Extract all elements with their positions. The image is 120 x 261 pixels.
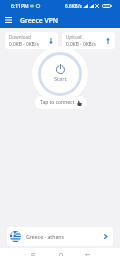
staticText: 6.6KB/s <box>65 3 82 9</box>
button[interactable]: Greece - athens <box>7 227 113 246</box>
staticText: 0.0KB - 0KB/s <box>9 41 39 48</box>
button[interactable]: Start <box>32 46 88 102</box>
button[interactable]: Recent apps <box>19 248 47 261</box>
staticText: 6:11PM <box>11 3 29 10</box>
button[interactable]: Home <box>47 248 74 261</box>
staticText: 0.0KB - 0KB/s <box>66 41 96 48</box>
staticText: Download <box>9 34 31 40</box>
staticText: Greece VPN <box>20 16 59 25</box>
button[interactable]: Upload <box>62 32 115 49</box>
staticText: Tap to connect <box>40 99 75 106</box>
button[interactable]: Tap to connect <box>35 96 86 109</box>
staticText: Start <box>54 75 67 83</box>
staticText: Upload <box>66 34 82 40</box>
button[interactable]: Open navigation menu <box>0 12 16 28</box>
button[interactable]: Download <box>5 32 58 49</box>
button[interactable]: Back <box>74 248 101 261</box>
staticText: Greece - athens <box>26 233 65 240</box>
